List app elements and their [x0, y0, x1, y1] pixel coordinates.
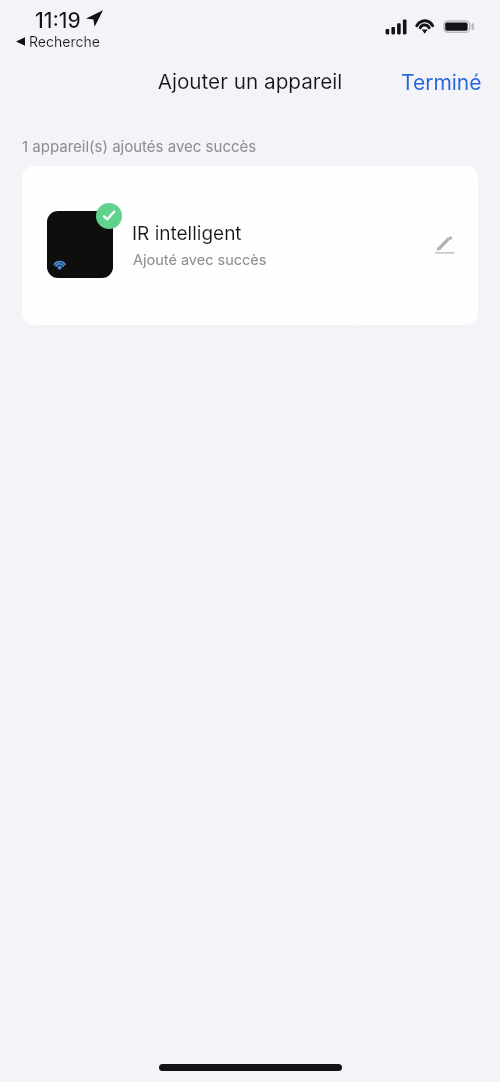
button[interactable]: Terminé: [392, 62, 490, 94]
button[interactable]: IR intelligent: [22, 166, 478, 325]
staticText: Ajouté avec succès: [133, 251, 267, 269]
button[interactable]: Recherche: [10, 31, 104, 53]
staticText: 1 appareil(s) ajoutés avec succès: [22, 137, 257, 155]
staticText: Terminé: [401, 70, 482, 95]
button[interactable]: Renommer: [412, 219, 462, 269]
staticText: IR intelligent: [132, 222, 242, 245]
staticText: Ajouter un appareil: [0, 69, 500, 94]
staticText: 11:19: [35, 8, 81, 33]
staticText: Recherche: [29, 33, 100, 50]
